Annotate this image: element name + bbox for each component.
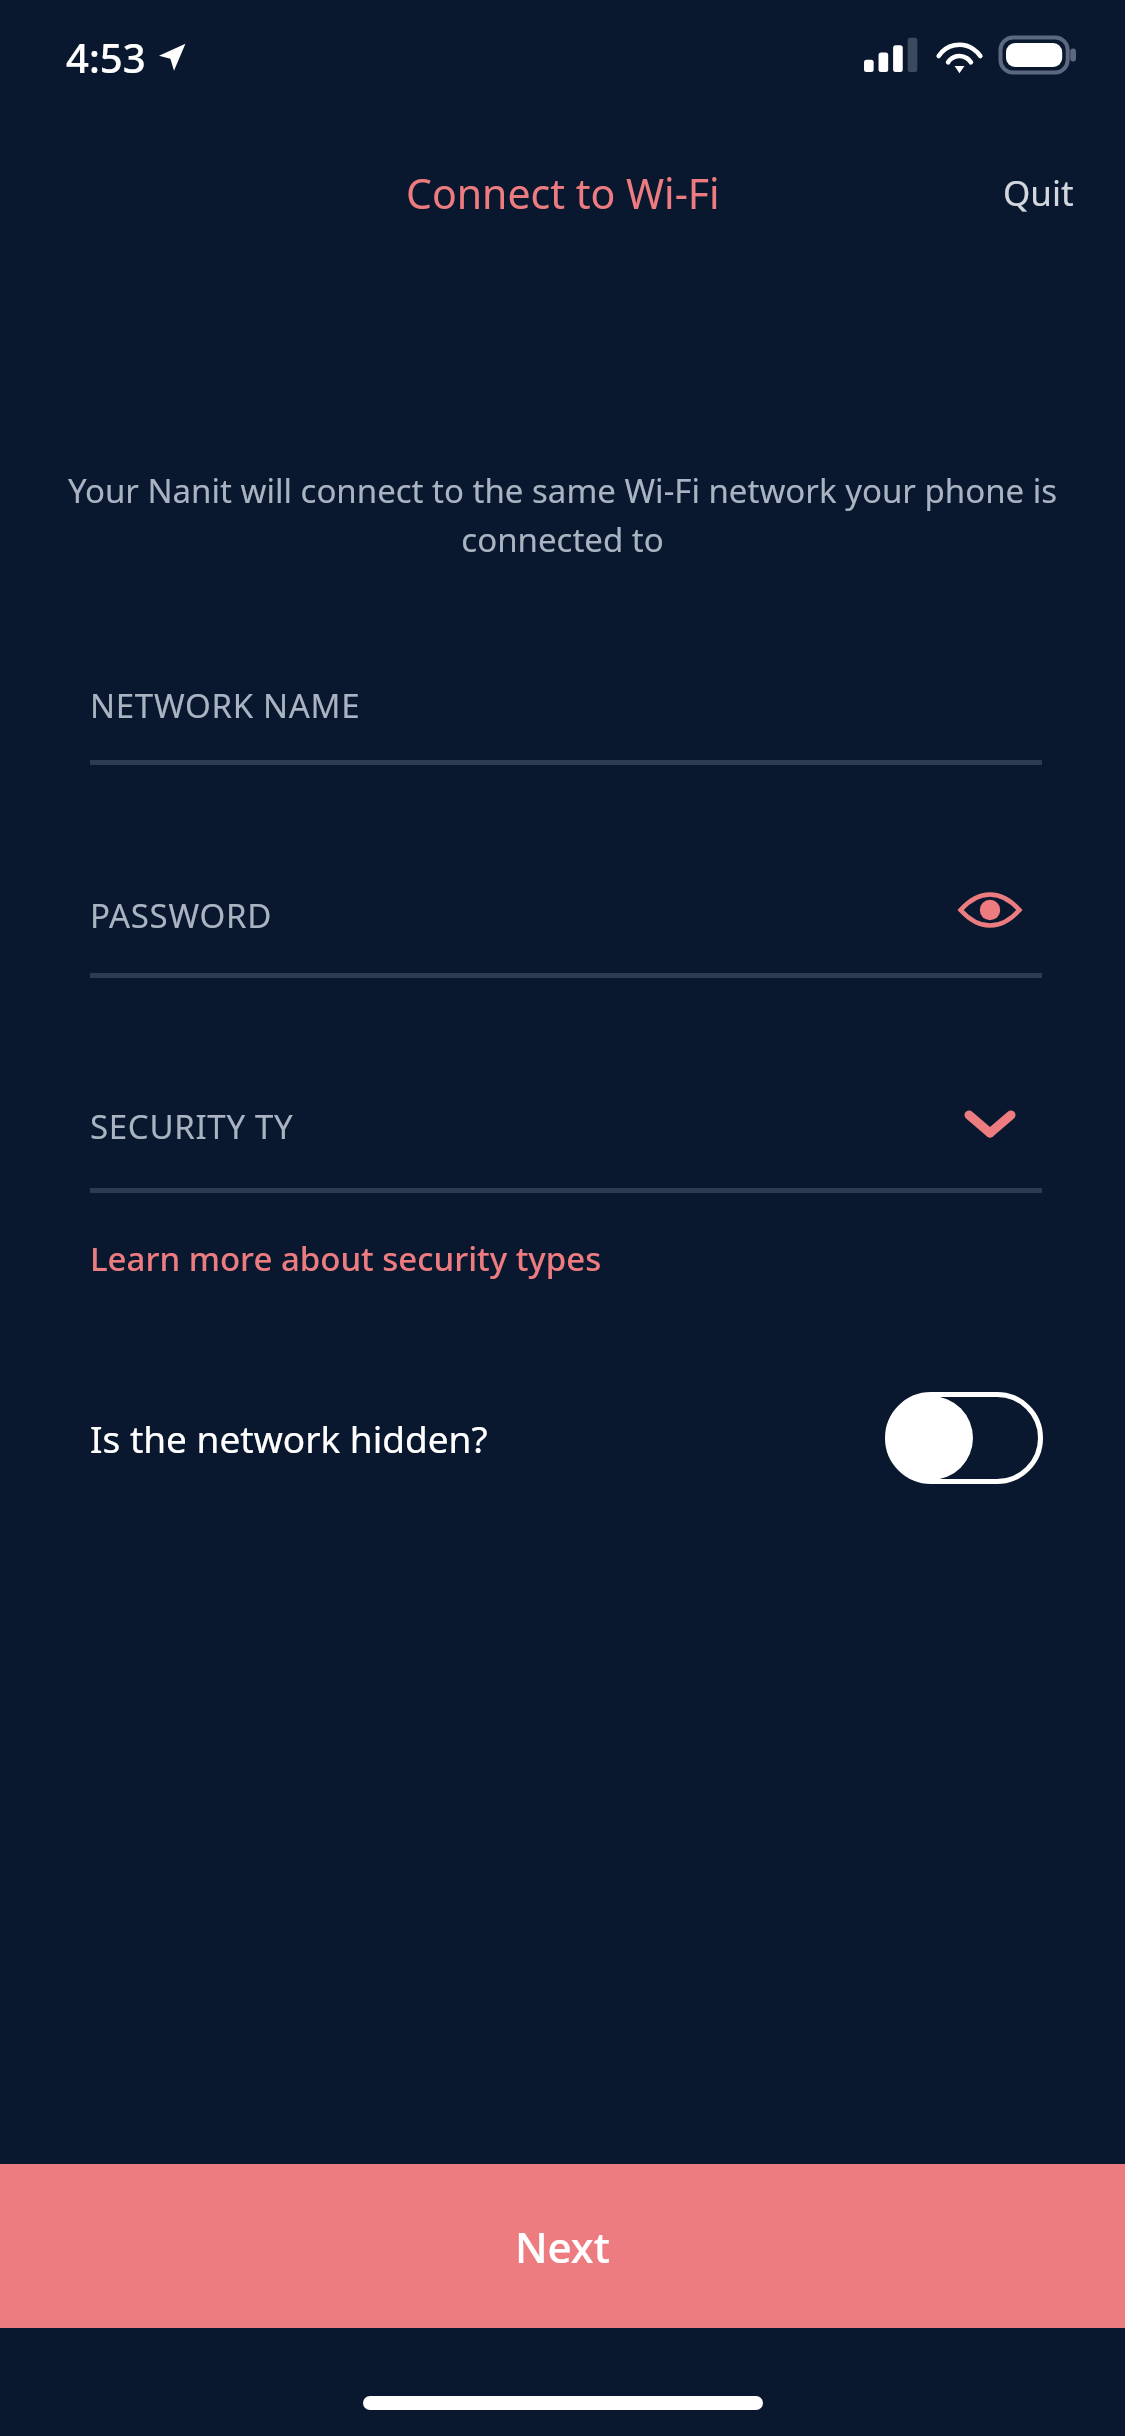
button[interactable]: Show password — [940, 868, 1040, 952]
button[interactable]: Is the network hidden? — [0, 1380, 1125, 1496]
staticText: 4:53 — [66, 30, 146, 84]
button[interactable]: Connect to Wi-Fi — [406, 165, 720, 221]
staticText: Is the network hidden? — [90, 1413, 488, 1463]
staticText: Quit — [1003, 169, 1074, 217]
button[interactable]: Select security type — [940, 1082, 1040, 1166]
button[interactable]: Next — [0, 2164, 1125, 2328]
button[interactable]: Quit — [997, 163, 1080, 223]
button[interactable]: Learn more about security types — [77, 1228, 615, 1289]
staticText: PASSWORD — [90, 893, 272, 938]
staticText: NETWORK NAME — [90, 683, 361, 728]
staticText: SECURITY TY — [90, 1104, 294, 1149]
staticText: Your Nanit will connect to the same Wi-F… — [62, 468, 1063, 561]
staticText: Next — [515, 2218, 610, 2275]
staticText: Learn more about security types — [90, 1236, 602, 1281]
